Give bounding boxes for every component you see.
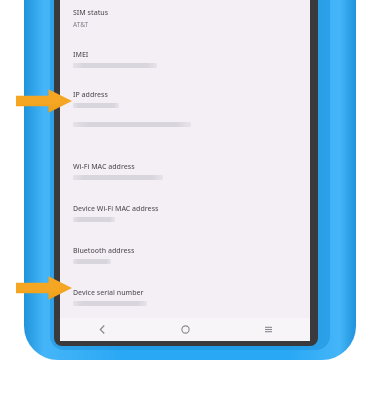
staticText: IMEI [73,50,89,60]
staticText: Bluetooth address [73,246,135,256]
button[interactable]: Callout arrow pointing to setting [16,275,72,301]
button[interactable]: Device serial number [73,288,313,306]
button[interactable]: IMEI [73,50,313,68]
staticText: Wi-Fi MAC address [73,162,135,172]
button[interactable]: Wi-Fi MAC address [73,162,313,180]
button[interactable]: Bluetooth address [73,246,313,264]
button[interactable]: Up time [73,330,313,340]
staticText: IP address [73,90,108,100]
staticText: Device Wi-Fi MAC address [73,204,159,214]
staticText: AT&T [73,20,89,29]
staticText: SIM status [73,8,109,18]
button[interactable]: Device Wi-Fi MAC address [73,204,313,222]
button[interactable]: Callout arrow pointing to setting [16,88,72,114]
staticText: Device serial number [73,288,144,298]
button[interactable]: IP address [73,90,313,127]
button[interactable]: Back [60,318,144,341]
button[interactable]: Home [144,318,227,341]
button[interactable]: Recent apps [227,318,310,341]
button[interactable]: SIM status [73,8,313,29]
